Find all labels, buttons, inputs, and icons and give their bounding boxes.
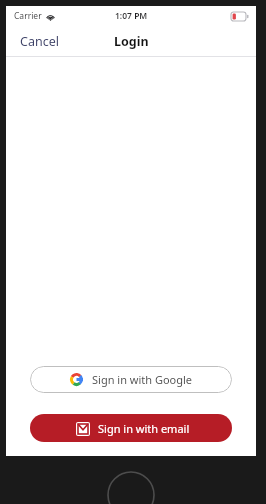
staticText: Sign in with Google — [92, 372, 193, 387]
button[interactable]: Sign in with Google — [30, 366, 232, 393]
staticText: Login — [114, 33, 149, 50]
button[interactable]: Sign in with email — [30, 414, 232, 442]
other: Home — [107, 471, 155, 504]
staticText: Carrier — [14, 10, 42, 22]
staticText: Cancel — [20, 33, 59, 50]
button[interactable]: Cancel — [6, 29, 73, 54]
staticText: 1:07 PM — [115, 10, 148, 22]
staticText: Sign in with email — [98, 421, 190, 436]
